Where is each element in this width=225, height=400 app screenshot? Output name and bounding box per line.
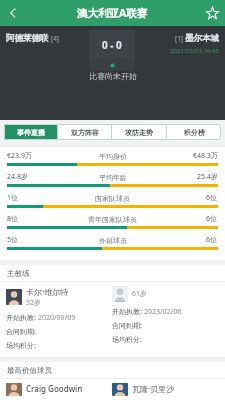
- staticText: 瓦隆·贝里沙: [132, 383, 175, 394]
- staticText: 阿德莱德联: [6, 33, 49, 44]
- staticText: 平均身价: [99, 152, 127, 161]
- button[interactable]: Craig Goodwin: [6, 383, 112, 396]
- staticText: 外籍球员: [99, 236, 127, 245]
- staticText: 61岁: [132, 289, 148, 299]
- staticText: 6位: [206, 193, 218, 203]
- button[interactable]: 瓦隆·贝里沙: [112, 383, 219, 396]
- staticText: 0 - 0: [102, 38, 122, 52]
- staticText: 25.4岁: [197, 172, 218, 182]
- staticText: [1]: [175, 34, 183, 43]
- staticText: 24.8岁: [7, 172, 28, 182]
- staticText: 平均年龄: [99, 173, 127, 182]
- staticText: 场均积分:: [6, 341, 36, 351]
- staticText: 青年国家队球员: [88, 215, 137, 224]
- staticText: 开始执教:: [6, 313, 36, 323]
- button[interactable]: 积分榜: [167, 124, 221, 140]
- staticText: 2023/05/03 16:45: [170, 47, 219, 55]
- button[interactable]: Back: [0, 0, 26, 26]
- staticText: 攻防走势: [125, 128, 153, 137]
- staticText: 事件直播: [17, 128, 45, 137]
- staticText: Craig Goodwin: [26, 383, 83, 394]
- staticText: 2020/09/09: [38, 313, 76, 323]
- staticText: 52岁: [26, 298, 42, 308]
- staticText: 墨尔本城: [185, 33, 219, 44]
- staticText: €23.9万: [7, 151, 32, 161]
- staticText: 开始执教:: [112, 307, 142, 317]
- staticText: 6位: [206, 214, 218, 224]
- staticText: 澳大利亚A联赛: [77, 6, 148, 20]
- button[interactable]: 61岁: [112, 286, 219, 347]
- staticText: 积分榜: [184, 128, 205, 137]
- staticText: 国家队球员: [95, 194, 130, 203]
- button[interactable]: 攻防走势: [112, 124, 166, 140]
- button[interactable]: 双方阵容: [58, 124, 111, 140]
- staticText: 合同到期:: [6, 327, 36, 337]
- staticText: €48.3万: [193, 151, 218, 161]
- button[interactable]: Favorite: [199, 0, 225, 26]
- staticText: 双方阵容: [71, 128, 99, 137]
- staticText: 8位: [7, 214, 19, 224]
- staticText: 场均积分:: [112, 335, 142, 345]
- staticText: 最高价值球员: [7, 366, 52, 375]
- staticText: 1位: [7, 193, 19, 203]
- button[interactable]: 卡尔·维尔特: [6, 286, 112, 353]
- staticText: 2023/02/06: [144, 307, 182, 317]
- staticText: 比赛尚未开始: [89, 71, 137, 81]
- staticText: 5位: [7, 235, 19, 245]
- staticText: [4]: [51, 34, 59, 43]
- staticText: 卡尔·维尔特: [26, 286, 69, 297]
- staticText: 主教练: [7, 269, 30, 278]
- staticText: 6位: [206, 235, 218, 245]
- staticText: 合同到期:: [112, 321, 142, 331]
- button[interactable]: 事件直播: [4, 124, 57, 140]
